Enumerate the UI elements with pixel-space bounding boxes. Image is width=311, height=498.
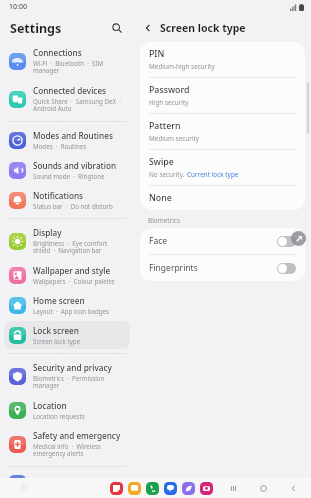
staticText: 10:00 bbox=[9, 2, 27, 12]
staticText: Lock screen bbox=[33, 325, 79, 336]
button[interactable]: Accounts and backup bbox=[4, 471, 130, 496]
staticText: Layout · App icon badges bbox=[33, 307, 110, 315]
button[interactable]: Face bbox=[140, 228, 305, 254]
button[interactable]: Apps bbox=[18, 482, 30, 494]
staticText: Sounds and vibration bbox=[33, 160, 117, 171]
staticText: Accounts and backup bbox=[33, 478, 117, 489]
staticText: Sound mode · Ringtone bbox=[33, 172, 105, 180]
staticText: Safety and emergency bbox=[33, 430, 121, 441]
button[interactable]: App 1 bbox=[110, 482, 123, 495]
staticText: Brightness · Eye comfort shield · Naviga… bbox=[33, 239, 125, 255]
button[interactable]: Lock screen bbox=[4, 321, 130, 349]
staticText: Wallpapers · Colour palette bbox=[33, 277, 115, 285]
button[interactable]: Notifications bbox=[4, 186, 130, 214]
button[interactable]: Back bbox=[288, 483, 299, 494]
button[interactable]: Recents bbox=[228, 483, 239, 494]
button[interactable]: App 4 bbox=[164, 482, 177, 495]
button[interactable]: Home screen bbox=[4, 291, 130, 319]
staticText: High security bbox=[149, 98, 189, 107]
staticText: Biometrics · Permission manager bbox=[33, 374, 125, 390]
staticText: Notifications bbox=[33, 190, 83, 201]
button[interactable]: App 5 bbox=[182, 482, 195, 495]
button[interactable]: Swipe bbox=[140, 150, 305, 185]
button[interactable] bbox=[277, 236, 296, 247]
staticText: Status bar · Do not disturb bbox=[33, 202, 113, 210]
button[interactable] bbox=[277, 263, 296, 274]
staticText: Swipe bbox=[149, 156, 174, 168]
staticText: Location bbox=[33, 400, 67, 411]
button[interactable]: Safety and emergency bbox=[4, 426, 130, 462]
button[interactable]: Back bbox=[140, 20, 156, 36]
staticText: Pattern bbox=[149, 120, 181, 132]
staticText: No security. bbox=[149, 170, 185, 179]
staticText: PIN bbox=[149, 48, 165, 60]
staticText: Location requests bbox=[33, 412, 85, 420]
button[interactable]: Connections bbox=[4, 43, 130, 79]
staticText: Home screen bbox=[33, 295, 85, 306]
staticText: Connected devices bbox=[33, 85, 107, 96]
staticText: Medium security bbox=[149, 134, 200, 143]
staticText: Password bbox=[149, 84, 190, 96]
staticText: Biometrics bbox=[148, 216, 180, 225]
staticText: Display bbox=[33, 227, 62, 238]
button[interactable]: Modes and Routines bbox=[4, 126, 130, 154]
staticText: Fingerprints bbox=[149, 262, 277, 274]
staticText: Face bbox=[149, 235, 277, 247]
button[interactable]: Pattern bbox=[140, 114, 305, 149]
staticText: Current lock type bbox=[187, 170, 239, 179]
staticText: Wallpaper and style bbox=[33, 265, 111, 276]
button[interactable]: Security and privacy bbox=[4, 358, 130, 394]
button[interactable]: Password bbox=[140, 78, 305, 113]
button[interactable]: App 2 bbox=[128, 482, 141, 495]
staticText: Security and privacy bbox=[33, 362, 112, 373]
button[interactable]: App 6 bbox=[200, 482, 213, 495]
staticText: Modes and Routines bbox=[33, 130, 113, 141]
button[interactable]: Display bbox=[4, 223, 130, 259]
button[interactable]: Wallpaper and style bbox=[4, 261, 130, 289]
button[interactable]: Search bbox=[108, 19, 126, 37]
button[interactable]: Fingerprints bbox=[140, 255, 305, 281]
staticText: Medical info · Wireless emergency alerts bbox=[33, 442, 125, 458]
staticText: Screen lock type bbox=[33, 337, 81, 345]
button[interactable]: None bbox=[140, 186, 305, 210]
staticText: Medium-high security bbox=[149, 62, 215, 71]
button[interactable]: App 3 bbox=[146, 482, 159, 495]
button[interactable]: Location bbox=[4, 396, 130, 424]
staticText: Connections bbox=[33, 47, 82, 58]
staticText: Screen lock type bbox=[160, 21, 246, 35]
button[interactable]: PIN bbox=[140, 42, 305, 77]
button[interactable]: Home bbox=[258, 483, 269, 494]
button[interactable]: Sounds and vibration bbox=[4, 156, 130, 184]
staticText: Wi-Fi · Bluetooth · SIM manager bbox=[33, 59, 125, 75]
staticText: Settings bbox=[10, 20, 62, 37]
staticText: Quick Share · Samsung DeX · Android Auto bbox=[33, 97, 125, 113]
button[interactable]: Connected devices bbox=[4, 81, 130, 117]
staticText: Modes · Routines bbox=[33, 142, 87, 150]
staticText: None bbox=[149, 192, 172, 204]
